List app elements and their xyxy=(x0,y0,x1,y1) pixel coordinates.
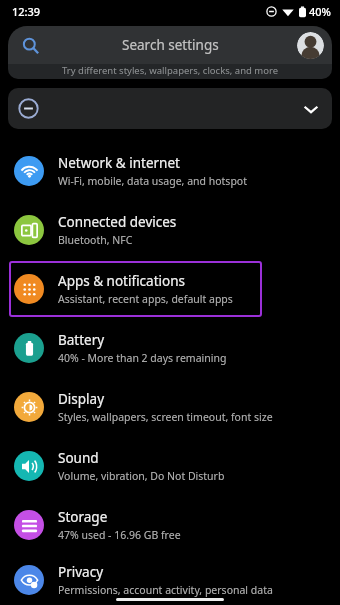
button[interactable]: Try different styles, wallpapers, clocks… xyxy=(8,64,332,79)
staticText: Bluetooth, NFC xyxy=(58,233,133,247)
button[interactable]: Do Not Disturb xyxy=(8,88,332,129)
button[interactable]: Account xyxy=(297,32,324,59)
button[interactable]: Apps & notifications xyxy=(9,261,262,317)
staticText: 12:39 xyxy=(12,4,41,19)
button[interactable]: Storage xyxy=(9,497,331,553)
staticText: Connected devices xyxy=(58,213,177,231)
staticText: Try different styles, wallpapers, clocks… xyxy=(62,64,279,77)
button[interactable]: Connected devices xyxy=(9,202,331,258)
button[interactable]: Display xyxy=(9,379,331,435)
other: Expand xyxy=(303,101,319,117)
staticText: Permissions, account activity, personal … xyxy=(58,583,273,597)
staticText: Sound xyxy=(58,449,99,467)
button[interactable]: Search xyxy=(8,26,332,64)
staticText: Wi-Fi, mobile, data usage, and hotspot xyxy=(58,174,247,188)
staticText: Apps & notifications xyxy=(58,272,185,290)
other: Do Not Disturb xyxy=(18,98,39,119)
staticText: Styles, wallpapers, screen timeout, font… xyxy=(58,410,273,424)
button[interactable]: Battery xyxy=(9,320,331,376)
other: Search xyxy=(22,37,39,54)
staticText: 40% - More than 2 days remaining xyxy=(58,351,227,365)
staticText: Storage xyxy=(58,508,108,526)
staticText: Privacy xyxy=(58,563,104,581)
staticText: Volume, vibration, Do Not Disturb xyxy=(58,469,225,483)
staticText: Assistant, recent apps, default apps xyxy=(58,292,233,306)
staticText: Search settings xyxy=(122,36,219,54)
button[interactable]: Network & internet xyxy=(9,143,331,199)
staticText: 47% used - 16.96 GB free xyxy=(58,528,181,542)
button[interactable]: Sound xyxy=(9,438,331,494)
staticText: Network & internet xyxy=(58,154,180,172)
staticText: Battery xyxy=(58,331,105,349)
staticText: 40% xyxy=(309,4,331,19)
staticText: Display xyxy=(58,390,105,408)
button[interactable]: Privacy xyxy=(9,554,331,605)
